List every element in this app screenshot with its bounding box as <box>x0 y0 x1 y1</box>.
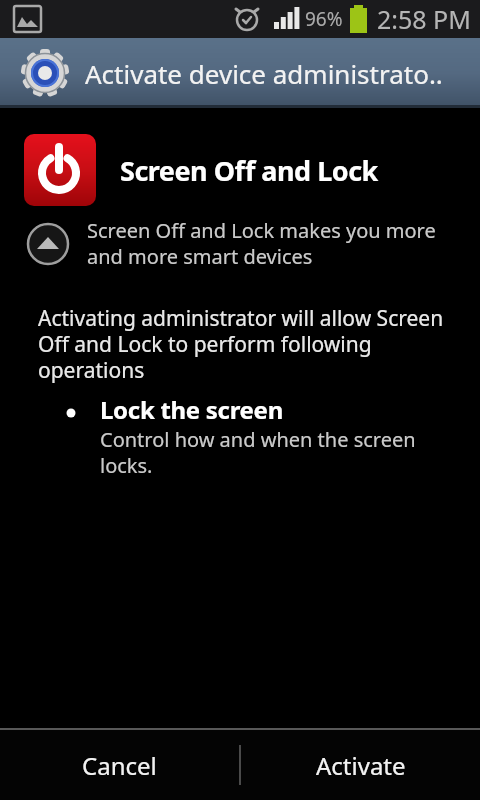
staticText: 96% <box>305 6 343 32</box>
staticText: Activating administrator will allow Scre… <box>38 304 444 385</box>
staticText: 2:58 PM <box>377 2 471 36</box>
staticText: Activate device administrato.. <box>85 56 443 91</box>
staticText: Lock the screen <box>100 393 283 426</box>
staticText: Screen Off and Lock makes you more and m… <box>87 217 436 270</box>
staticText: Screen Off and Lock <box>120 152 378 189</box>
button[interactable]: Cancel <box>0 730 239 800</box>
button[interactable]: Activate <box>241 730 480 800</box>
staticText: Cancel <box>82 749 157 782</box>
staticText: Control how and when the screen locks. <box>100 426 416 478</box>
staticText: Activate <box>316 749 406 782</box>
